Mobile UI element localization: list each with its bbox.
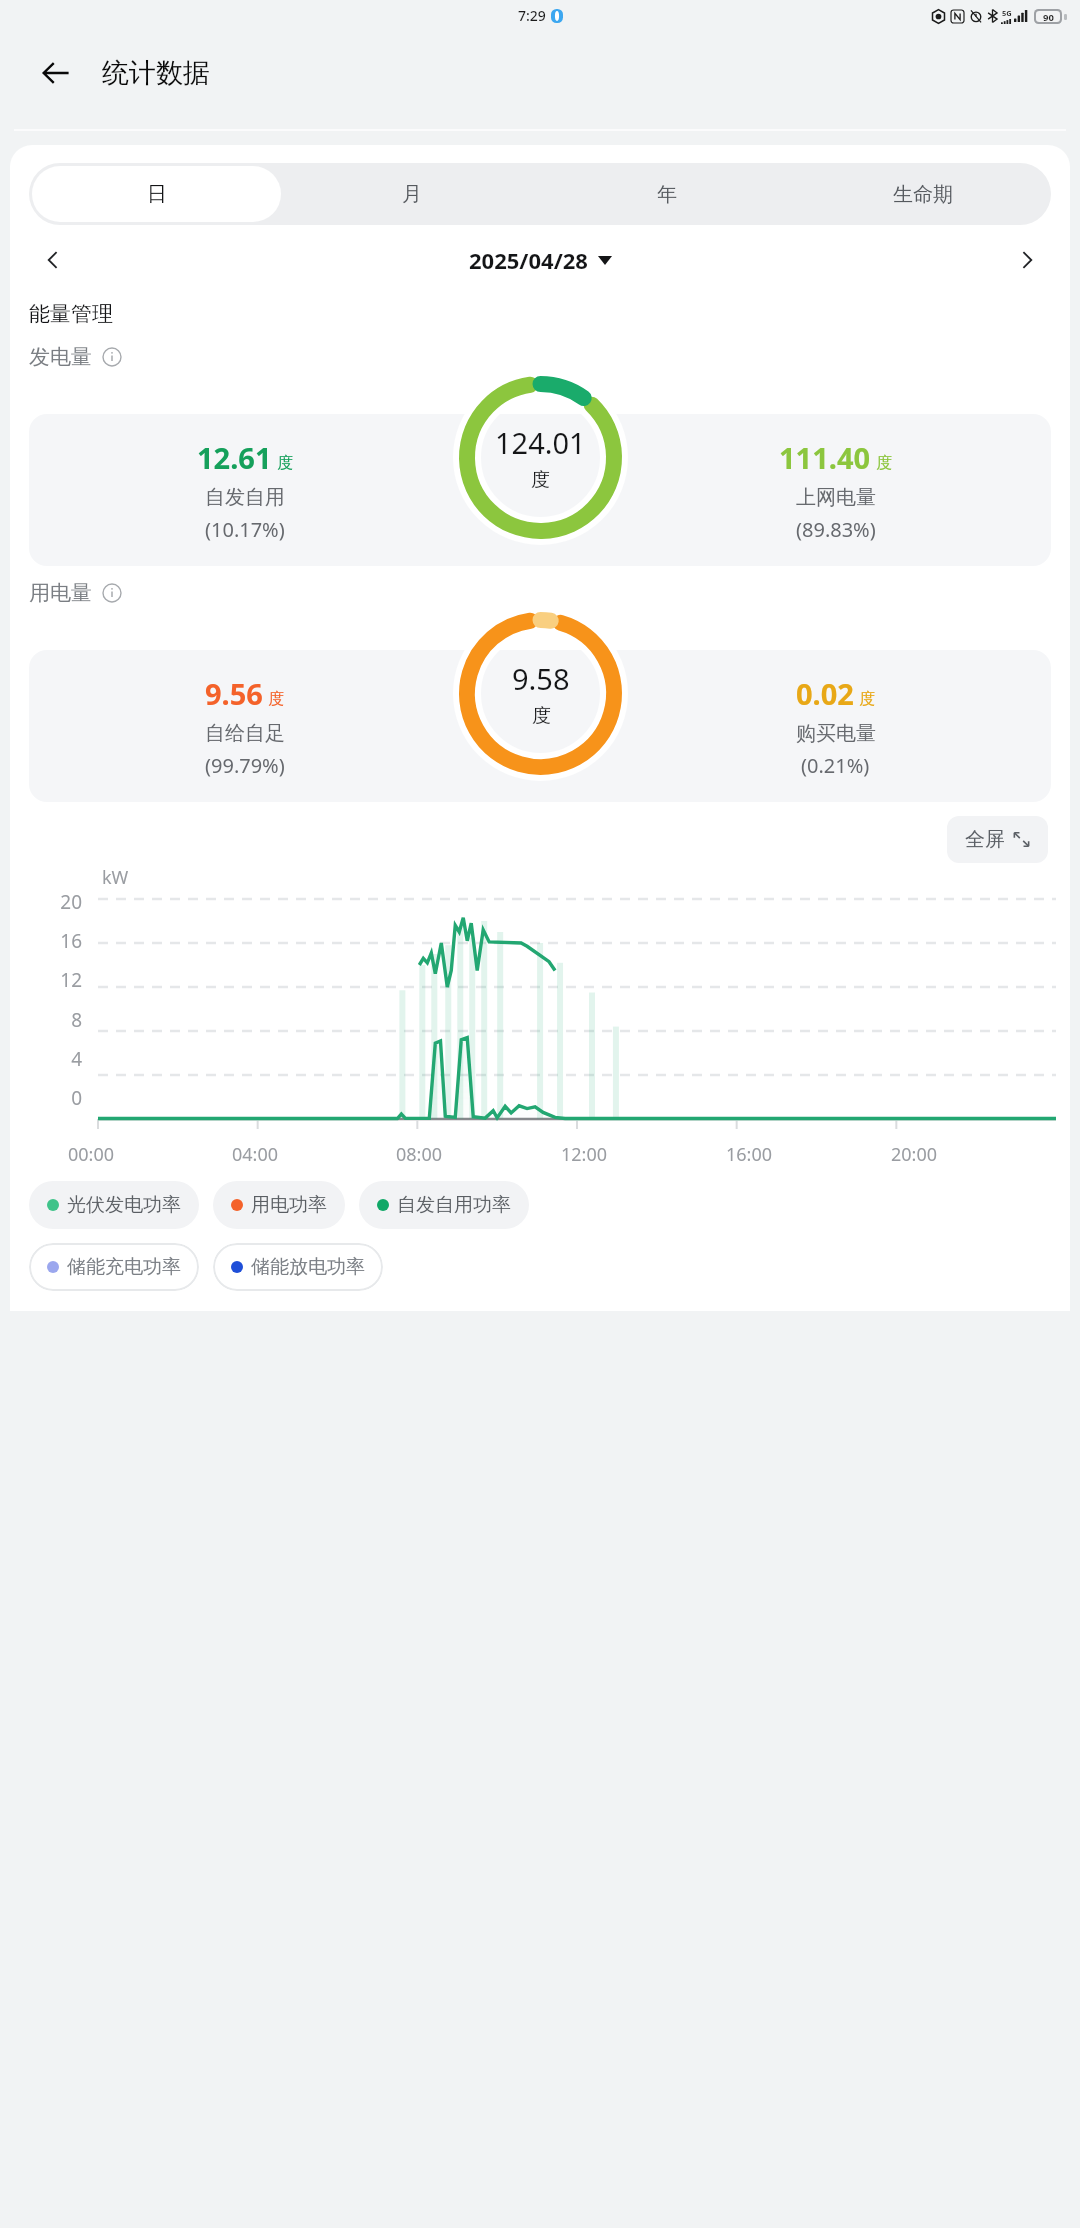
staticText: 9.58 <box>512 659 570 698</box>
staticText: 月 <box>402 182 422 207</box>
staticText: 124.01 <box>495 423 586 462</box>
button[interactable]: Back <box>30 47 82 99</box>
staticText: 8 <box>44 1007 82 1033</box>
button[interactable]: 2025/04/28 <box>76 245 1004 275</box>
staticText: 12 <box>44 967 82 993</box>
button[interactable]: 光伏发电功率 <box>29 1181 199 1229</box>
button[interactable]: Next <box>1004 237 1050 283</box>
staticText: 度 <box>531 468 550 492</box>
staticText: 储能充电功率 <box>67 1255 181 1279</box>
button[interactable]: 用电功率 <box>213 1181 345 1229</box>
staticText: 年 <box>657 182 677 207</box>
staticText: 90 <box>1043 11 1054 22</box>
staticText: 度 <box>277 453 293 473</box>
staticText: 04:00 <box>232 1142 279 1167</box>
staticText: 7:29 <box>518 6 546 25</box>
button[interactable]: 月 <box>287 166 536 222</box>
staticText: 发电量 <box>29 344 92 370</box>
staticText: 20 <box>44 889 82 915</box>
button[interactable]: 全屏 <box>947 816 1048 863</box>
staticText: 日 <box>147 182 167 207</box>
staticText: 储能放电功率 <box>251 1255 365 1279</box>
staticText: 度 <box>876 453 892 473</box>
staticText: (99.79%) <box>205 752 285 779</box>
button[interactable]: 生命期 <box>798 166 1048 222</box>
staticText: 能量管理 <box>29 301 113 327</box>
staticText: (10.17%) <box>205 516 285 543</box>
staticText: 12.61 <box>197 438 272 477</box>
staticText: 用电量 <box>29 580 92 606</box>
staticText: 自发自用 <box>205 485 285 510</box>
staticText: 自给自足 <box>205 721 285 746</box>
staticText: 生命期 <box>893 182 953 207</box>
button[interactable]: 用电量 <box>29 580 122 606</box>
staticText: 2025/04/28 <box>469 245 588 275</box>
button[interactable]: 储能放电功率 <box>213 1243 383 1291</box>
staticText: 全屏 <box>965 827 1005 852</box>
staticText: 用电功率 <box>251 1193 327 1217</box>
staticText: (0.21%) <box>801 752 870 779</box>
staticText: 5G <box>1002 8 1012 18</box>
staticText: 购买电量 <box>796 721 876 746</box>
button[interactable]: Previous <box>30 237 76 283</box>
staticText: 20:00 <box>891 1142 938 1167</box>
staticText: 统计数据 <box>102 56 210 90</box>
staticText: 9.56 <box>205 674 263 713</box>
staticText: 0.02 <box>796 674 854 713</box>
button[interactable]: 储能充电功率 <box>29 1243 199 1291</box>
staticText: 4 <box>44 1046 82 1072</box>
staticText: 12:00 <box>561 1142 608 1167</box>
button[interactable]: 发电量 <box>29 344 122 370</box>
staticText: 16 <box>44 928 82 954</box>
staticText: 08:00 <box>396 1142 443 1167</box>
staticText: kW <box>102 865 129 890</box>
staticText: 度 <box>532 704 551 728</box>
staticText: 度 <box>859 689 875 709</box>
button[interactable]: 年 <box>542 166 792 222</box>
staticText: 00:00 <box>68 1142 115 1167</box>
staticText: (89.83%) <box>796 516 876 543</box>
staticText: 16:00 <box>726 1142 773 1167</box>
button[interactable]: 自发自用功率 <box>359 1181 529 1229</box>
staticText: 度 <box>268 689 284 709</box>
staticText: 上网电量 <box>796 485 876 510</box>
button[interactable]: 日 <box>32 166 281 222</box>
staticText: 0 <box>44 1085 82 1111</box>
staticText: 光伏发电功率 <box>67 1193 181 1217</box>
staticText: 自发自用功率 <box>397 1193 511 1217</box>
staticText: 111.40 <box>779 438 871 477</box>
